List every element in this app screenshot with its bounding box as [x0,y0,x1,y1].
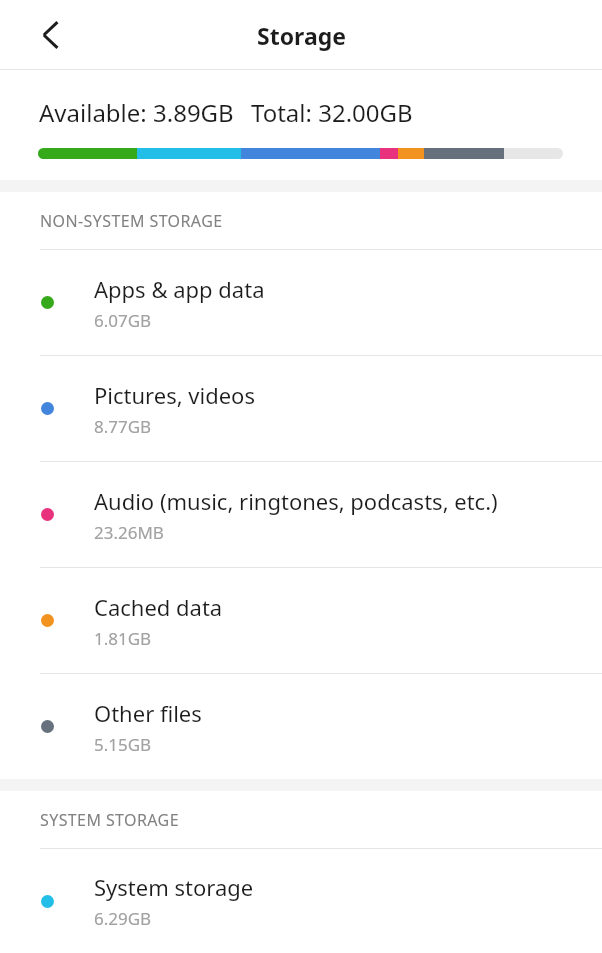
staticText: 8.77GB [94,415,152,438]
button[interactable]: Other files [0,674,602,779]
button[interactable]: System storage [0,849,602,953]
staticText: Available: 3.89GB [39,96,234,129]
button[interactable]: Apps & app data [0,250,602,355]
staticText: Pictures, videos [94,380,255,410]
button[interactable]: Pictures, videos [0,356,602,461]
button[interactable]: Cached data [0,568,602,673]
staticText: Storage [257,20,346,51]
staticText: NON-SYSTEM STORAGE [40,210,223,232]
staticText: Apps & app data [94,274,265,304]
staticText: 1.81GB [94,627,152,650]
staticText: 23.26MB [94,521,164,544]
button[interactable]: Audio (music, ringtones, podcasts, etc.) [0,462,602,567]
staticText: Total: 32.00GB [251,96,413,129]
staticText: 5.15GB [94,733,152,756]
button[interactable]: Back [20,3,84,67]
staticText: SYSTEM STORAGE [40,809,179,831]
staticText: 6.07GB [94,309,152,332]
staticText: System storage [94,872,254,902]
staticText: Cached data [94,592,223,622]
staticText: Audio (music, ringtones, podcasts, etc.) [94,486,498,516]
staticText: Other files [94,698,202,728]
staticText: 6.29GB [94,907,152,930]
